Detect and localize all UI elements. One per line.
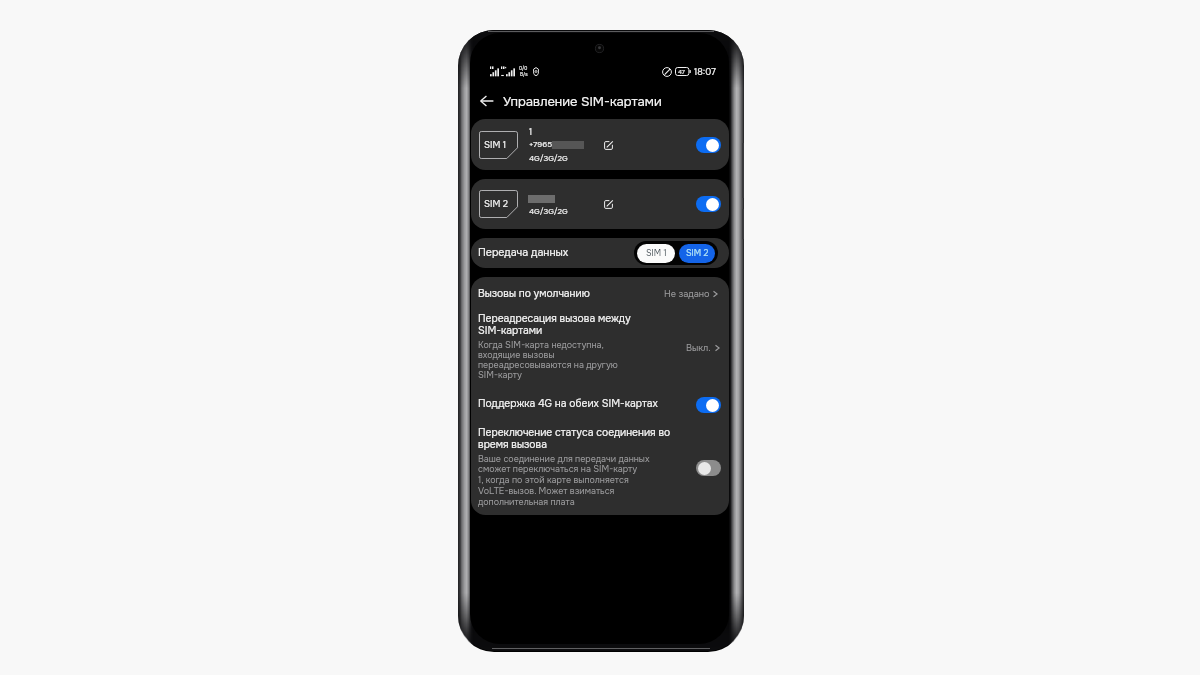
button[interactable]: Toggle, on xyxy=(696,397,721,413)
button[interactable]: SIM 1 xyxy=(471,119,729,170)
staticText: SIM 2 xyxy=(484,198,508,210)
button[interactable]: Переключение статуса соединения во время… xyxy=(471,418,729,514)
staticText: +7965 xyxy=(529,139,552,149)
button[interactable]: Edit SIM name xyxy=(598,135,618,155)
staticText: 18:07 xyxy=(694,66,716,77)
staticText: Поддержка 4G на обеих SIM-картах xyxy=(478,397,658,410)
button[interactable]: SIM 2 xyxy=(679,244,715,263)
staticText: 47 xyxy=(678,68,685,76)
staticText: 1 xyxy=(529,127,533,138)
button[interactable]: Back xyxy=(474,88,500,114)
button[interactable]: Переадресация вызова между SIM-картами xyxy=(471,310,729,388)
staticText: Когда SIM-карта недоступна, входящие выз… xyxy=(478,339,618,380)
staticText: Не задано xyxy=(664,288,710,300)
staticText: Вызовы по умолчанию xyxy=(478,287,590,300)
staticText: Управление SIM-картами xyxy=(503,93,662,110)
staticText: 0/0 xyxy=(519,66,528,72)
button[interactable]: SIM 1 xyxy=(637,244,675,263)
button[interactable]: Toggle, on xyxy=(696,137,721,153)
staticText: SIM 2 xyxy=(686,248,709,259)
staticText: Переадресация вызова между SIM-картами xyxy=(478,312,631,337)
button[interactable]: Поддержка 4G на обеих SIM-картах xyxy=(471,388,729,418)
staticText: 4G/3G/2G xyxy=(529,206,568,216)
button[interactable]: SIM 2 xyxy=(471,179,729,229)
staticText: Ваше соединение для передачи данных смож… xyxy=(478,453,650,508)
staticText: SIM 1 xyxy=(484,139,507,151)
button[interactable]: Edit SIM name xyxy=(598,194,618,214)
staticText: Выкл. xyxy=(686,342,711,354)
button[interactable]: Toggle, off xyxy=(696,460,721,476)
staticText: 4G/3G/2G xyxy=(529,153,568,163)
staticText: Передача данных xyxy=(478,246,569,260)
staticText: SIM 1 xyxy=(646,248,667,259)
staticText: B/s xyxy=(520,72,528,77)
staticText: Переключение статуса соединения во время… xyxy=(478,426,671,451)
button[interactable]: Вызовы по умолчанию xyxy=(471,277,729,310)
button[interactable]: Toggle, on xyxy=(696,196,721,212)
